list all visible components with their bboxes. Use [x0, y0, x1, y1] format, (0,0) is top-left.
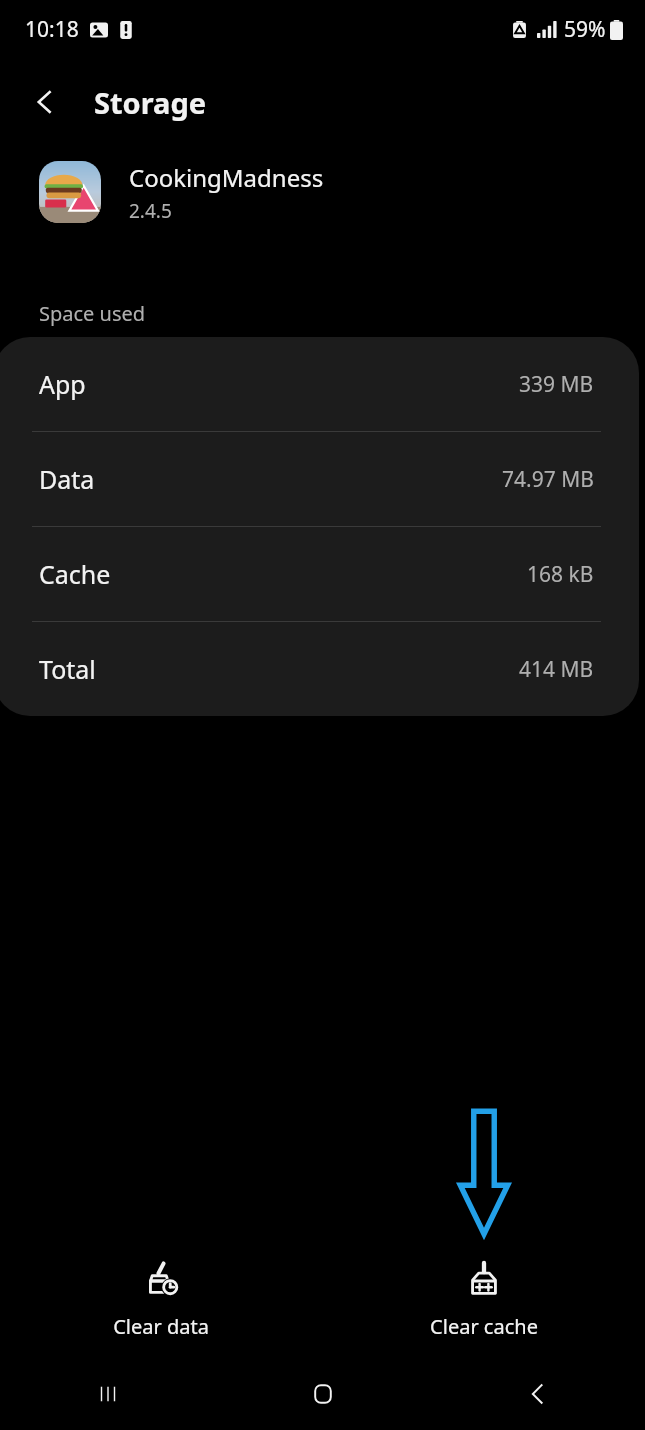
staticText: 10:18 [25, 15, 79, 44]
staticText: 339 MB [519, 370, 594, 399]
button[interactable]: Recent apps [0, 1358, 215, 1430]
staticText: Storage [94, 83, 207, 122]
button[interactable]: Cache [0, 527, 639, 621]
staticText: 414 MB [519, 655, 594, 684]
staticText: 74.97 MB [502, 465, 594, 494]
button[interactable]: Total [0, 622, 639, 716]
staticText: 168 kB [527, 560, 594, 589]
button[interactable]: CookingMadness [0, 146, 645, 238]
button[interactable]: Data [0, 432, 639, 526]
button[interactable]: Clear cache [402, 1251, 566, 1348]
staticText: Total [39, 652, 96, 686]
button[interactable]: App [0, 337, 639, 431]
button[interactable]: Home [215, 1358, 430, 1430]
staticText: App [39, 367, 86, 401]
button[interactable]: Back [430, 1358, 645, 1430]
staticText: CookingMadness [129, 161, 324, 194]
staticText: Cache [39, 557, 111, 591]
button[interactable]: Back [18, 75, 72, 129]
staticText: Clear cache [430, 1313, 538, 1340]
staticText: 59% [564, 15, 606, 44]
staticText: Space used [39, 300, 146, 327]
button[interactable]: Clear data [85, 1251, 237, 1348]
staticText: Clear data [113, 1313, 209, 1340]
staticText: 2.4.5 [129, 198, 172, 224]
staticText: Data [39, 462, 95, 496]
